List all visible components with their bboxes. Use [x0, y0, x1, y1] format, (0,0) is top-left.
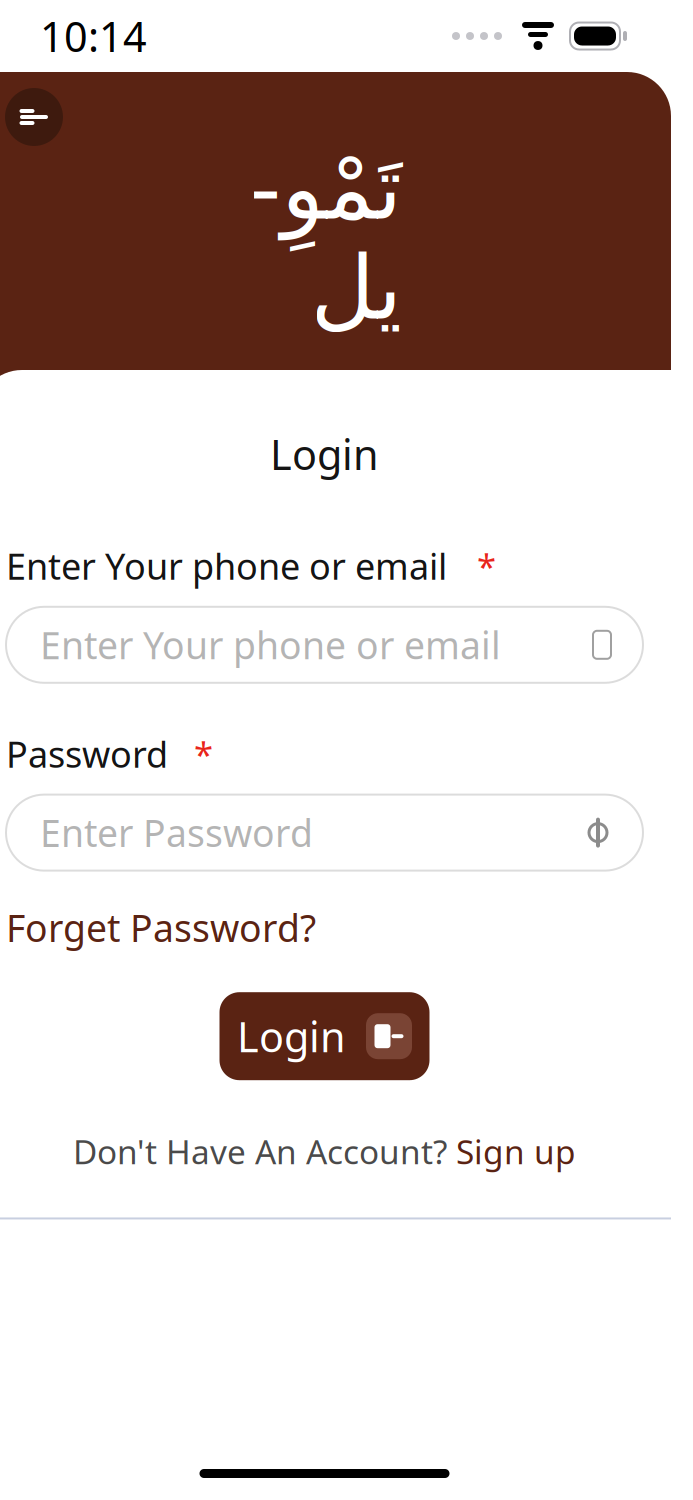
staticText: Forget Password? [6, 903, 316, 952]
staticText: Enter Your phone or email [40, 620, 501, 670]
staticText: Enter Password [40, 808, 313, 857]
staticText: * [477, 543, 496, 589]
button[interactable]: Login [219, 992, 429, 1080]
button[interactable]: Enter Password [6, 795, 643, 871]
staticText: Sign up [456, 1129, 576, 1173]
button[interactable]: Enter Your phone or email [6, 607, 643, 683]
staticText: Password [6, 730, 168, 778]
staticText: Login [270, 427, 379, 481]
staticText: Enter Your phone or email [6, 542, 447, 590]
button[interactable]: Forget Password? [0, 893, 316, 962]
button[interactable]: Don't Have An Account? [73, 1121, 576, 1181]
staticText: * [194, 731, 213, 777]
staticText: تَمْوِيل [249, 138, 401, 338]
button[interactable]: Back [5, 88, 63, 146]
staticText: 10:14 [40, 9, 147, 63]
staticText: Login [237, 1009, 346, 1064]
staticText: Don't Have An Account? [73, 1129, 447, 1173]
